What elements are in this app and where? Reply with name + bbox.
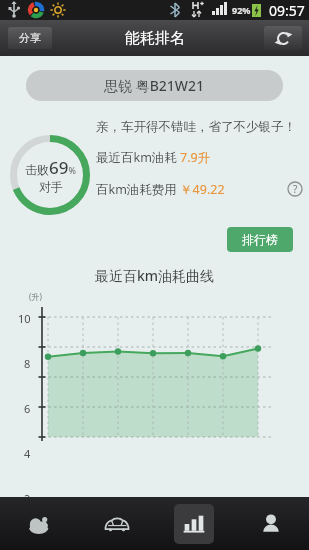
staticText: 分享	[19, 31, 41, 45]
staticText: 思锐 粤B21W21	[104, 76, 205, 95]
staticText: 4	[24, 446, 31, 461]
staticText: 6	[24, 401, 31, 416]
staticText: 10	[18, 311, 31, 326]
button[interactable]: 分享	[8, 27, 52, 49]
staticText: (升)	[29, 291, 42, 302]
staticText: 百km油耗费用 ￥49.22	[96, 181, 225, 198]
button[interactable]: Weather	[0, 497, 78, 550]
staticText: 09:57	[269, 1, 305, 20]
button[interactable]: 排行榜	[227, 227, 293, 252]
staticText: 击败69%	[25, 156, 76, 179]
button[interactable]: 思锐 粤B21W21	[26, 70, 283, 101]
staticText: 排行榜	[242, 232, 278, 247]
staticText: ?	[293, 182, 298, 196]
button[interactable]: Refresh	[264, 26, 302, 50]
staticText: 能耗排名	[125, 29, 185, 48]
staticText: 对手	[39, 179, 63, 194]
staticText: 最近百km油耗 7.9升	[96, 149, 211, 166]
staticText: 亲，车开得不错哇，省了不少银子！	[96, 119, 296, 135]
staticText: 8	[24, 356, 31, 371]
button[interactable]: Profile	[232, 497, 309, 550]
button[interactable]: Car	[78, 497, 155, 550]
staticText: 最近百km油耗曲线	[95, 266, 215, 285]
staticText: 2	[24, 491, 31, 506]
staticText: 92%	[232, 4, 251, 16]
button[interactable]: Help	[285, 179, 305, 199]
button[interactable]: Statistics	[155, 497, 232, 550]
